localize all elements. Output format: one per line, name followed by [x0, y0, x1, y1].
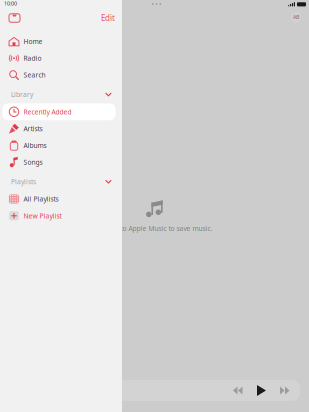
- staticText: Radio: [23, 54, 41, 63]
- staticText: Playlists: [11, 177, 36, 186]
- button[interactable]: Recently Added: [0, 103, 124, 120]
- staticText: Artists: [23, 124, 42, 133]
- button[interactable]: Songs: [0, 154, 124, 171]
- staticText: Albums: [23, 141, 46, 150]
- staticText: Library: [11, 90, 33, 99]
- staticText: AB: [293, 13, 299, 21]
- button[interactable]: All Playlists: [0, 191, 124, 207]
- staticText: 10:00: [4, 0, 17, 7]
- staticText: Home: [23, 37, 42, 46]
- button[interactable]: Search: [0, 67, 124, 83]
- button[interactable]: Home: [0, 33, 124, 50]
- button[interactable]: Artists: [0, 120, 124, 137]
- button[interactable]: New Playlist: [0, 207, 124, 224]
- button[interactable]: Radio: [0, 50, 124, 67]
- button[interactable]: Play: [253, 381, 270, 400]
- staticText: Search: [23, 71, 45, 79]
- staticText: Recently Added: [23, 107, 71, 116]
- staticText: Songs: [23, 158, 42, 167]
- staticText: Sign in to Apple Music to save music.: [96, 224, 212, 233]
- button[interactable]: Next: [276, 382, 294, 398]
- button[interactable]: Previous: [229, 382, 247, 398]
- button[interactable]: Collapse Playlists: [103, 178, 114, 186]
- button[interactable]: Hide Sidebar: [6, 10, 23, 26]
- button[interactable]: Albums: [0, 137, 124, 154]
- button[interactable]: Collapse Library: [103, 90, 114, 98]
- staticText: New Playlist: [23, 211, 61, 220]
- button[interactable]: Edit: [98, 10, 118, 26]
- staticText: All Playlists: [23, 195, 58, 203]
- button[interactable]: Account: [289, 10, 303, 24]
- staticText: Edit: [101, 13, 115, 23]
